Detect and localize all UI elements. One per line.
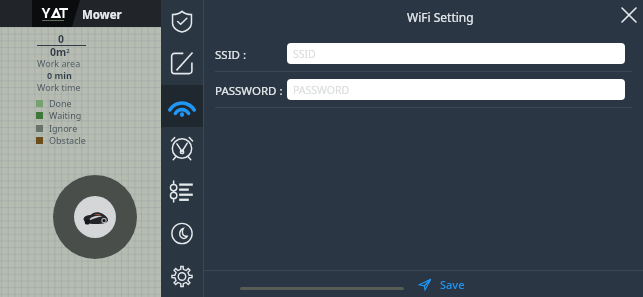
staticText: Ignore (49, 122, 78, 134)
staticText: SSID : (215, 47, 246, 63)
button[interactable]: Night mode (161, 212, 203, 254)
staticText: PASSWORD : (215, 83, 283, 99)
staticText: 0m2 (50, 45, 70, 59)
staticText: Work area (37, 57, 81, 69)
staticText: Obstacle (49, 134, 86, 146)
staticText: 0 (58, 32, 65, 46)
button[interactable]: Mower position (53, 175, 137, 259)
button[interactable]: SSID (287, 43, 625, 64)
button[interactable]: PASSWORD (287, 79, 625, 100)
staticText: 0 min (47, 69, 72, 81)
staticText: Waiting (49, 109, 82, 121)
staticText: Save (440, 277, 465, 292)
button[interactable]: Save (416, 275, 468, 294)
button[interactable]: Security (161, 0, 203, 42)
staticText: WiFi Setting (407, 9, 474, 25)
button[interactable]: Schedule (161, 127, 203, 169)
button[interactable]: Settings (161, 255, 203, 297)
staticText: SSID (293, 47, 316, 61)
staticText: Mower (82, 7, 122, 23)
staticText: Work time (37, 81, 81, 93)
button[interactable]: Close (616, 2, 642, 28)
staticText: Done (49, 97, 72, 109)
button[interactable]: Parameters (161, 170, 203, 212)
button[interactable]: WiFi (161, 85, 203, 127)
button[interactable]: Edit map (161, 42, 203, 84)
staticText: PASSWORD (293, 83, 350, 97)
